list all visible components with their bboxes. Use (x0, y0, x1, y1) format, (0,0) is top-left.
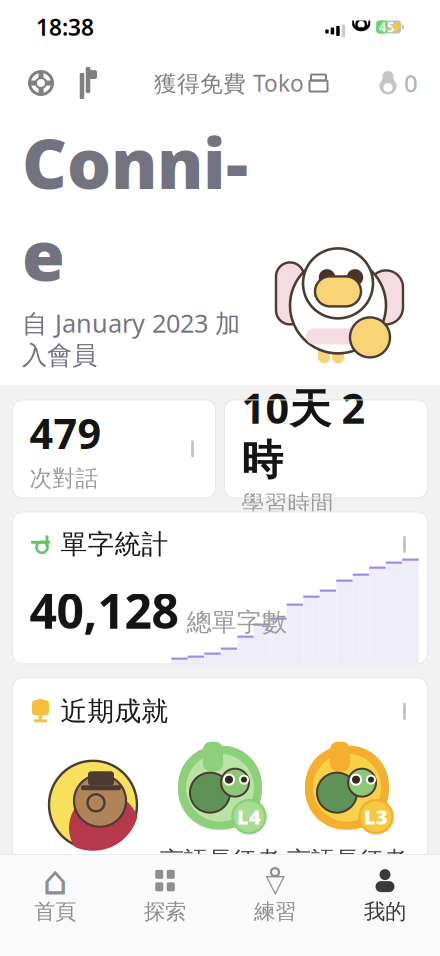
staticText: 我的 (364, 899, 406, 925)
button[interactable]: 獲得免費 Toko (154, 68, 328, 98)
staticText: 學習時間 (241, 490, 333, 518)
staticText: 獨立思考者 (33, 861, 153, 890)
button[interactable]: 編輯 (66, 64, 104, 102)
button[interactable]: ▽ (220, 863, 330, 929)
staticText: ⌂ (42, 858, 67, 903)
staticText: 18:38 (36, 12, 94, 42)
button[interactable]: 連續學習天數 (378, 67, 418, 99)
button[interactable]: 479 (12, 400, 215, 498)
staticText: 首頁 (34, 899, 76, 925)
staticText: 次對話 (29, 464, 98, 492)
staticText: 探索 (144, 899, 186, 925)
button[interactable]: 探索 (110, 863, 220, 929)
staticText: L3 (364, 803, 388, 830)
staticText: 2025-8-20 (40, 894, 145, 924)
staticText: 479 (29, 405, 101, 460)
staticText: 40,128 (29, 578, 178, 642)
staticText: 言語長征者 (IV) (160, 844, 280, 907)
staticText: Connie (22, 116, 248, 300)
staticText: 2025-7-15 (167, 911, 272, 941)
staticText: ⚡ (389, 20, 404, 34)
staticText: 45 (379, 18, 395, 36)
button[interactable]: ⌂ (0, 863, 110, 929)
staticText: 獲得免費 Toko (154, 68, 304, 98)
staticText: 0 (404, 67, 418, 99)
button[interactable]: 設定 (22, 64, 60, 102)
staticText: 總單字數 (186, 607, 286, 638)
staticText: 2025-6-29 (294, 911, 399, 941)
staticText: 近期成就 (60, 695, 168, 728)
staticText: ▽ (265, 869, 284, 898)
button[interactable]: 10天 2時 (224, 400, 427, 498)
staticText: 練習 (254, 899, 296, 925)
staticText: 單字統計 (60, 528, 168, 561)
staticText: L4 (237, 803, 261, 830)
button[interactable]: 近期成就 (12, 678, 427, 956)
button[interactable]: 單字統計 (12, 512, 427, 664)
button[interactable]: 我的 (330, 863, 440, 929)
staticText: 自 January 2023 加入會員 (22, 306, 240, 371)
staticText: 10天 2時 (241, 380, 365, 486)
staticText: 言語長征者 (III) (287, 844, 407, 907)
